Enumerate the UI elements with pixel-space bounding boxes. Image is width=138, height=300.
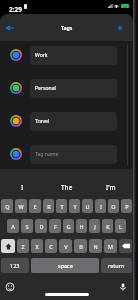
button[interactable]: shift — [1, 239, 15, 253]
button[interactable]: N — [89, 239, 102, 253]
staticText: V — [64, 243, 68, 250]
staticText: Tag name — [35, 151, 59, 158]
button[interactable]: 123 — [1, 258, 29, 273]
staticText: The — [61, 183, 73, 192]
button[interactable]: F — [49, 219, 61, 233]
staticText: P — [125, 203, 129, 210]
staticText: space — [58, 262, 73, 269]
staticText: N — [93, 243, 98, 250]
button[interactable]: Travel — [0, 111, 133, 144]
button[interactable]: V — [59, 239, 72, 253]
button[interactable]: L — [115, 219, 126, 233]
button[interactable]: S — [21, 219, 33, 233]
button[interactable]: Work — [0, 45, 133, 78]
button[interactable]: delete — [119, 239, 132, 253]
button[interactable]: W — [15, 199, 27, 213]
button[interactable]: I'm — [89, 181, 133, 193]
staticText: X — [35, 243, 39, 250]
button[interactable]: I — [0, 181, 45, 193]
staticText: L — [119, 223, 122, 230]
staticText: M — [108, 243, 113, 250]
staticText: Z — [21, 243, 25, 250]
button[interactable]: C — [45, 239, 57, 253]
staticText: Work — [35, 52, 48, 59]
staticText: D — [39, 223, 44, 230]
button[interactable]: G — [63, 219, 74, 233]
button[interactable]: Dictation — [118, 282, 128, 292]
staticText: Q — [5, 203, 10, 210]
staticText: S — [25, 223, 29, 230]
button[interactable]: R — [43, 199, 54, 213]
staticText: O — [111, 203, 116, 210]
staticText: U — [85, 203, 90, 210]
staticText: 2:29 — [9, 5, 22, 14]
staticText: Travel — [35, 118, 50, 125]
staticText: A — [11, 223, 15, 230]
button[interactable]: H — [76, 219, 87, 233]
staticText: H — [79, 223, 84, 230]
button[interactable]: D — [35, 219, 47, 233]
staticText: T — [60, 203, 64, 210]
button[interactable]: U — [82, 199, 93, 213]
staticText: E — [33, 203, 37, 210]
button[interactable]: Personal — [0, 78, 133, 111]
staticText: return — [108, 262, 125, 269]
button[interactable]: Q — [1, 199, 13, 213]
staticText: J — [94, 223, 96, 230]
button[interactable]: P — [121, 199, 132, 213]
button[interactable]: Z — [17, 239, 29, 253]
button[interactable]: E — [29, 199, 41, 213]
button[interactable]: O — [108, 199, 119, 213]
staticText: C — [49, 243, 53, 250]
staticText: F — [54, 223, 57, 230]
staticText: Y — [73, 203, 77, 210]
button[interactable]: The — [45, 181, 89, 193]
staticText: B — [79, 243, 83, 250]
button[interactable]: Back — [1, 20, 17, 36]
staticText: G — [66, 223, 71, 230]
staticText: Personal — [35, 85, 56, 92]
button[interactable]: I — [95, 199, 106, 213]
button[interactable]: return — [101, 258, 132, 273]
button[interactable]: B — [74, 239, 87, 253]
button[interactable]: T — [56, 199, 67, 213]
button[interactable]: Emoji — [5, 282, 15, 292]
button[interactable]: K — [102, 219, 113, 233]
button[interactable]: space — [31, 258, 99, 273]
button[interactable]: J — [89, 219, 100, 233]
staticText: 123 — [10, 262, 20, 269]
staticText: I'm — [106, 183, 116, 192]
staticText: W — [18, 203, 24, 210]
staticText: Tags — [61, 24, 73, 31]
staticText: 54 — [123, 4, 128, 8]
button[interactable]: X — [31, 239, 43, 253]
button[interactable]: Add tag — [112, 20, 128, 36]
staticText: R — [47, 203, 51, 210]
button[interactable]: A — [7, 219, 19, 233]
button[interactable]: M — [104, 239, 117, 253]
staticText: I — [100, 203, 102, 210]
button[interactable]: Tag name — [0, 144, 133, 177]
staticText: I — [21, 183, 24, 192]
button[interactable]: Y — [69, 199, 80, 213]
staticText: K — [106, 223, 110, 230]
